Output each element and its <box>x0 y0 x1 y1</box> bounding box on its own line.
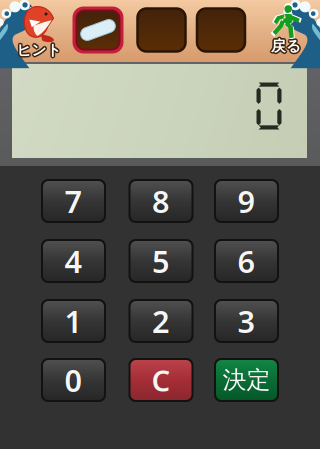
button[interactable]: C <box>128 358 193 402</box>
button[interactable]: 8 <box>128 179 193 223</box>
button[interactable]: ヒント <box>0 0 78 62</box>
button[interactable]: 9 <box>214 179 279 223</box>
staticText: ヒント <box>16 39 61 57</box>
button[interactable]: 決定 <box>214 358 279 402</box>
button[interactable]: 戻る <box>258 0 314 62</box>
staticText: 8 <box>152 181 170 221</box>
staticText: 決定 <box>222 365 270 395</box>
staticText: 9 <box>237 181 255 221</box>
button[interactable]: 3 <box>214 299 279 343</box>
button[interactable]: Selected item <box>72 6 123 53</box>
staticText: 戻る <box>272 36 302 54</box>
staticText: 戻る <box>271 37 301 55</box>
staticText: 3 <box>237 301 255 341</box>
staticText: 戻る <box>270 36 300 54</box>
staticText: ヒント <box>15 42 60 60</box>
button[interactable]: Empty item slot <box>136 6 187 53</box>
staticText: ヒント <box>18 41 63 59</box>
button[interactable]: 2 <box>128 299 193 343</box>
staticText: 6 <box>237 241 255 281</box>
button[interactable]: 1 <box>41 299 106 343</box>
staticText: ヒント <box>16 42 61 60</box>
staticText: 戻る <box>270 38 300 56</box>
button[interactable]: 6 <box>214 239 279 283</box>
staticText: 1 <box>64 301 82 341</box>
staticText: 戻る <box>272 37 302 55</box>
button[interactable]: 4 <box>41 239 106 283</box>
staticText: 5 <box>152 241 170 281</box>
staticText: ヒント <box>15 40 60 58</box>
button[interactable]: 5 <box>128 239 193 283</box>
button[interactable]: 7 <box>41 179 106 223</box>
staticText: 戻る <box>271 38 301 56</box>
staticText: 0 <box>64 360 82 400</box>
button[interactable]: 0 <box>41 358 106 402</box>
staticText: C <box>151 360 170 399</box>
staticText: 4 <box>64 241 82 281</box>
staticText: ヒント <box>18 40 63 58</box>
staticText: 戻る <box>269 37 299 55</box>
button[interactable]: Empty item slot <box>195 6 246 53</box>
staticText: 戻る <box>272 38 302 56</box>
staticText: ヒント <box>15 41 60 59</box>
staticText: ヒント <box>18 42 63 60</box>
staticText: ヒント <box>16 41 61 59</box>
staticText: 戻る <box>271 35 301 53</box>
staticText: 2 <box>152 301 170 341</box>
staticText: 7 <box>64 181 82 221</box>
